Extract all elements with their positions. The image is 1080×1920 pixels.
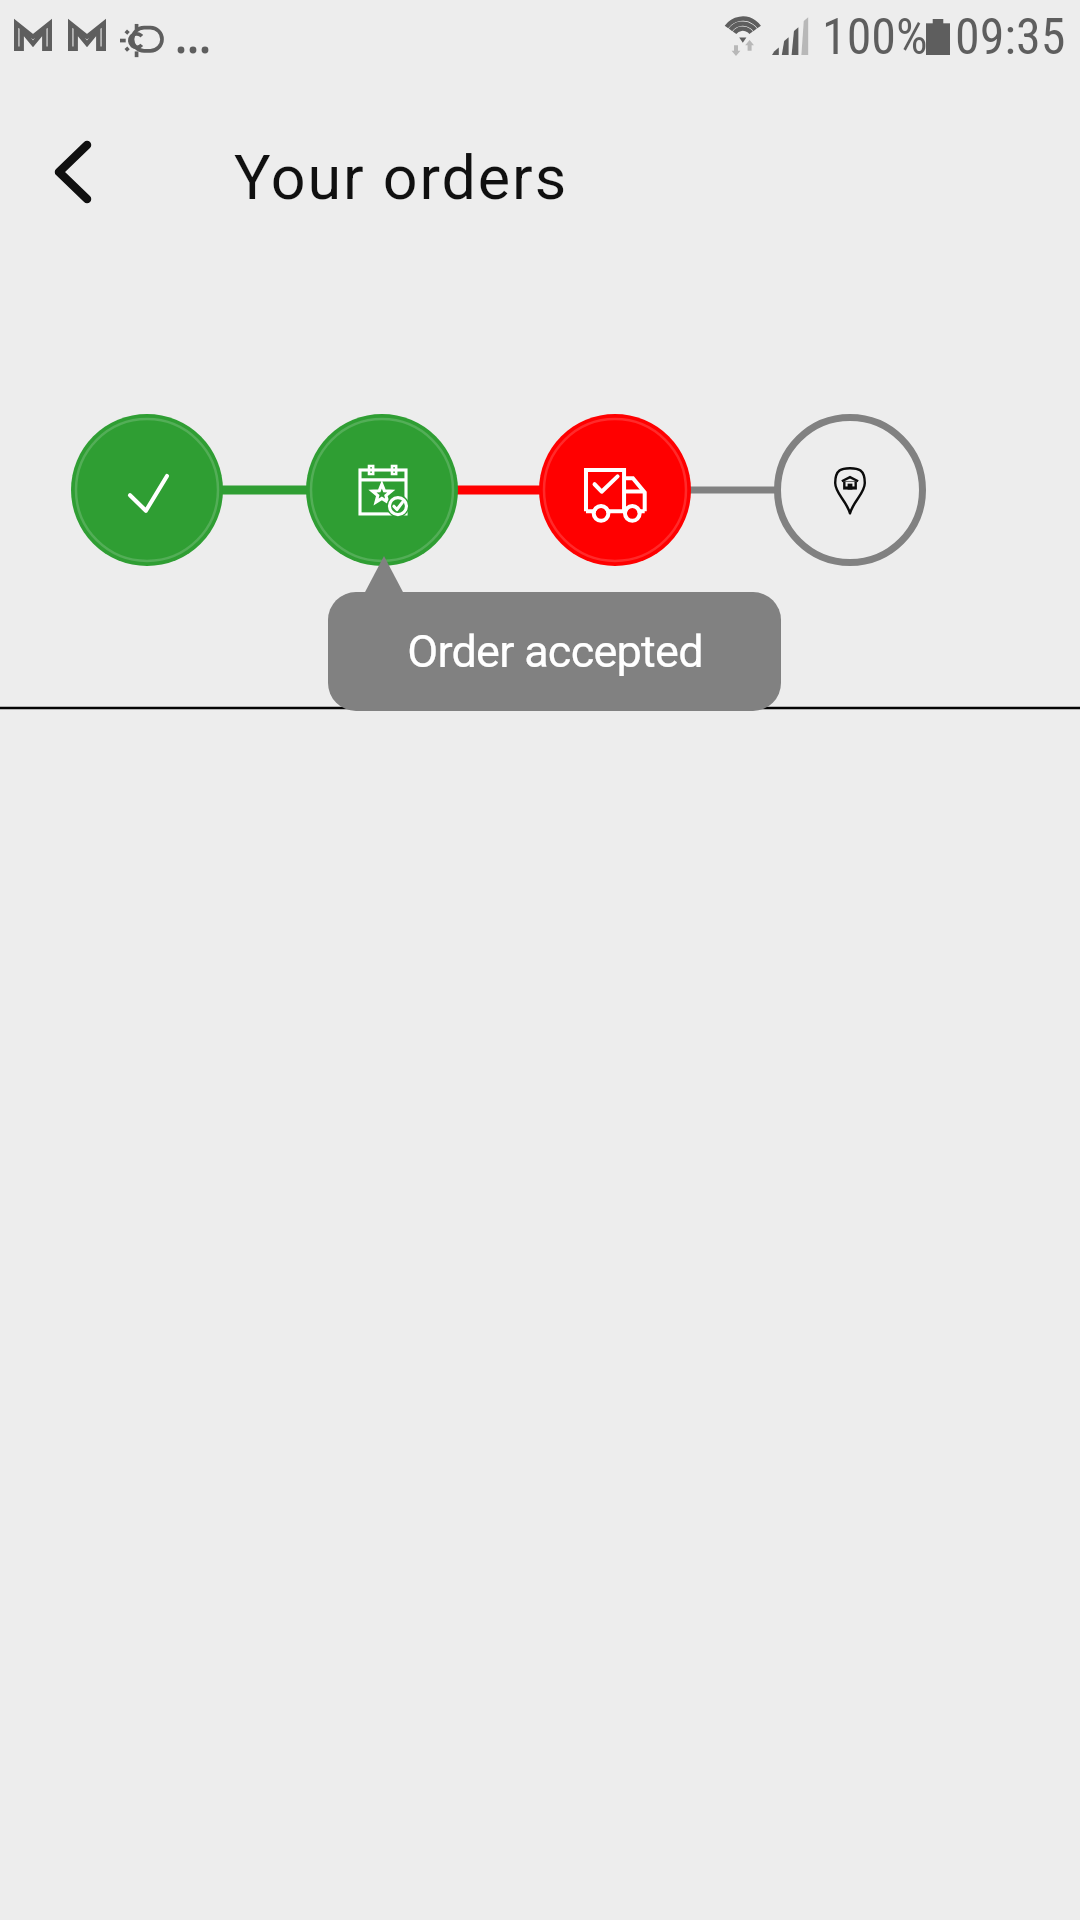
button[interactable]: Out for delivery <box>539 414 691 566</box>
staticText: 09:35 <box>955 8 1066 67</box>
staticText: Order accepted <box>407 625 703 678</box>
staticText: Your orders <box>234 142 569 213</box>
button[interactable]: Order accepted <box>306 414 458 566</box>
button[interactable]: Order accepted <box>328 592 781 711</box>
button[interactable]: Back <box>24 128 120 216</box>
staticText: 100% <box>822 8 928 67</box>
button[interactable]: Order placed <box>71 414 223 566</box>
button[interactable]: Delivered <box>774 414 926 566</box>
